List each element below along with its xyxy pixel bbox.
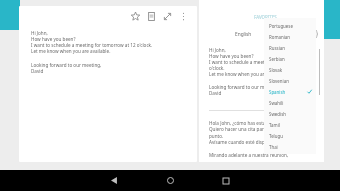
staticText: Hola John, ¿cómo has estado? [209,120,273,126]
staticText: Mirando adelante a nuestra reunión, [209,152,288,158]
staticText: Let me know when you are available. [209,71,289,77]
staticText: David [209,90,222,96]
button[interactable]: More options [175,8,191,24]
staticText: David [31,68,44,74]
button[interactable]: English [213,31,273,38]
button[interactable]: Spanish [264,86,316,97]
staticText: Telugu [269,133,283,139]
button[interactable]: Translate [304,27,318,41]
button[interactable]: Slovenian [264,75,316,86]
button[interactable]: Romanian [264,31,316,42]
button[interactable]: Russian [264,42,316,53]
staticText: How have you been? [31,36,76,42]
button[interactable]: Home [142,170,198,191]
staticText: Slovenian [269,78,289,84]
button[interactable]: Tamil [264,119,316,130]
button[interactable]: Portuguese [264,20,316,31]
button[interactable]: Slovak [264,64,316,75]
button[interactable]: FAVORITES [207,14,324,23]
staticText: Romanian [269,34,290,40]
button[interactable]: Favourite [127,8,143,24]
staticText: How have you been? [209,53,254,59]
staticText: Portuguese [269,23,293,29]
staticText: English [235,31,252,38]
button[interactable]: Serbian [264,53,316,64]
staticText: Swedish [269,111,286,117]
staticText: Slovak [269,67,283,73]
staticText: Tamil [269,122,280,128]
button[interactable]: Thai [264,141,316,152]
button[interactable]: Copy [143,8,159,24]
staticText: Looking forward to our meeting, [31,62,102,68]
staticText: Russian [269,45,285,51]
staticText: I want to schedule a meeting for tomorro… [209,59,314,65]
staticText: Let me know when you are available. [31,48,111,54]
button[interactable]: Swap languages [273,27,287,41]
staticText: FAVORITES [254,14,277,20]
staticText: Serbian [269,56,285,62]
staticText: o'clock. [209,65,225,71]
staticText: I want to schedule a meeting for tomorro… [31,42,153,48]
button[interactable]: Expand [159,8,175,24]
staticText: Looking forward to our meeting, [209,84,280,90]
staticText: Quiero hacer una cita para mañana a las … [209,126,316,139]
staticText: Swahili [269,100,284,106]
button[interactable]: Recent apps [198,170,254,191]
button[interactable]: Swedish [264,108,316,119]
staticText: Hi John, [209,47,226,53]
button[interactable]: Back [86,170,142,191]
button[interactable]: Telugu [264,130,316,141]
button[interactable]: Swahili [264,97,316,108]
staticText: Avísame cuando esté disponible. [209,139,280,145]
staticText: Hi John, [31,30,48,36]
staticText: Spanish [269,89,286,95]
staticText: Thai [269,144,278,150]
